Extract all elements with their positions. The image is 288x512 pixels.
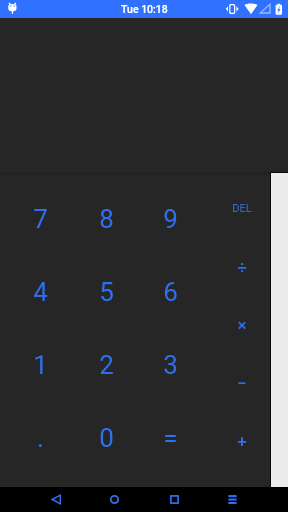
staticText: 8 (99, 204, 114, 234)
staticText: 3 (163, 350, 178, 380)
button[interactable]: 8 (74, 182, 139, 255)
button[interactable]: = (138, 401, 203, 474)
button[interactable]: Home (94, 487, 134, 512)
button[interactable]: 5 (74, 255, 139, 328)
button[interactable]: 6 (138, 255, 203, 328)
staticText: 5 (99, 277, 114, 307)
staticText: − (237, 373, 247, 393)
button[interactable]: 4 (8, 255, 73, 328)
staticText: × (237, 315, 247, 335)
staticText: 1 (33, 350, 48, 380)
button[interactable]: Back (36, 487, 76, 512)
staticText: . (37, 423, 44, 453)
button[interactable]: 7 (8, 182, 73, 255)
staticText: 2 (99, 350, 114, 380)
button[interactable]: − (209, 354, 274, 412)
button[interactable]: . (8, 401, 73, 474)
staticText: ÷ (237, 257, 247, 277)
button[interactable]: × (209, 296, 274, 354)
staticText: 7 (33, 204, 48, 234)
button[interactable]: 0 (74, 401, 139, 474)
staticText: + (237, 431, 247, 451)
button[interactable]: Menu (212, 487, 252, 512)
button[interactable]: Recent apps (154, 487, 194, 512)
staticText: 6 (163, 277, 178, 307)
button[interactable]: ÷ (209, 238, 274, 296)
staticText: DEL (232, 202, 252, 215)
staticText: 0 (99, 423, 114, 453)
staticText: 9 (163, 204, 178, 234)
button[interactable]: + (209, 412, 274, 470)
staticText: 4 (33, 277, 48, 307)
button[interactable]: 1 (8, 328, 73, 401)
button[interactable]: DEL (209, 179, 274, 237)
button[interactable]: 2 (74, 328, 139, 401)
button[interactable]: 3 (138, 328, 203, 401)
button[interactable]: 9 (138, 182, 203, 255)
staticText: Tue 10:18 (121, 3, 168, 15)
staticText: = (163, 423, 178, 453)
